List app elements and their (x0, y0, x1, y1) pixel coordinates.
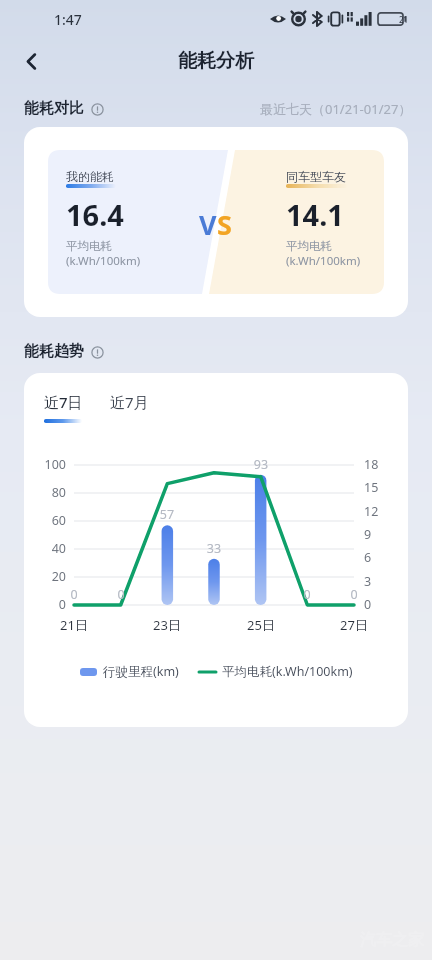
button[interactable]: 近7日 (44, 392, 83, 423)
button[interactable]: 我的能耗 (24, 127, 408, 317)
staticText: 1:47 (54, 10, 82, 29)
staticText: (k.Wh/100km) (66, 253, 141, 269)
staticText: 近7月 (110, 392, 149, 412)
staticText: 27日 (336, 616, 372, 634)
staticText: 能耗趋势 (24, 342, 84, 361)
staticText: 100 (24, 456, 66, 473)
staticText: 近7日 (44, 392, 83, 412)
staticText: 0 (24, 596, 66, 613)
staticText: 23日 (149, 616, 185, 634)
staticText: 25日 (243, 616, 279, 634)
button[interactable]: 返回 (10, 40, 52, 82)
button[interactable]: 说明 (89, 101, 105, 117)
staticText: 15 (364, 479, 379, 496)
staticText: 16.4 (66, 195, 124, 234)
staticText: 9 (364, 526, 372, 543)
staticText: 平均电耗 (286, 239, 332, 253)
staticText: S (217, 206, 232, 243)
button[interactable]: 行驶里程(km) (80, 663, 179, 680)
staticText: 0 (364, 596, 372, 613)
staticText: 我的能耗 (66, 169, 114, 184)
staticText: 40 (24, 540, 66, 557)
staticText: 0 (340, 586, 368, 603)
staticText: 3 (364, 573, 372, 590)
staticText: V (199, 206, 217, 243)
staticText: 0 (293, 586, 321, 603)
staticText: 18 (364, 456, 379, 473)
staticText: (k.Wh/100km) (286, 253, 361, 269)
staticText: 14.1 (286, 195, 344, 234)
staticText: 平均电耗(k.Wh/100km) (222, 663, 353, 680)
staticText: 能耗分析 (178, 49, 254, 73)
staticText: 能耗对比 (24, 99, 84, 118)
staticText: 行驶里程(km) (103, 663, 179, 680)
staticText: 平均电耗 (66, 239, 112, 253)
button[interactable]: 说明 (89, 344, 105, 360)
staticText: 60 (24, 512, 66, 529)
staticText: 20 (24, 568, 66, 585)
staticText: 33 (200, 540, 228, 557)
staticText: 93 (247, 456, 275, 473)
staticText: 6 (364, 549, 372, 566)
staticText: 12 (364, 503, 379, 520)
staticText: 同车型车友 (286, 169, 346, 184)
button[interactable]: 平均电耗(k.Wh/100km) (199, 663, 353, 680)
staticText: 21日 (56, 616, 92, 634)
staticText: 最近七天（01/21-01/27） (260, 100, 412, 118)
staticText: 21 (399, 14, 409, 25)
button[interactable]: 近7月 (110, 392, 149, 412)
staticText: 0 (107, 586, 135, 603)
staticText: 0 (60, 586, 88, 603)
staticText: 80 (24, 484, 66, 501)
staticText: 57 (153, 506, 181, 523)
